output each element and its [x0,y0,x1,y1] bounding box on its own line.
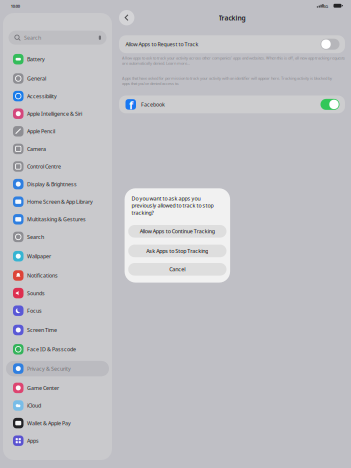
button[interactable]: Home Screen & App Library [3,193,112,210]
staticText: Do you want to ask apps you previously a… [132,195,214,216]
staticText: General [27,75,46,82]
staticText: Screen Time [27,326,57,334]
button[interactable]: Display & Brightness [3,175,112,193]
button[interactable]: Face ID & Passcode [3,340,112,358]
staticText: Privacy & Security [27,365,71,372]
staticText: Tracking [218,14,245,22]
staticText: Apple Intelligence & Siri [27,110,82,117]
staticText: Allow Apps to Request to Track [125,41,198,48]
button[interactable]: Wallet & Apple Pay [3,414,112,432]
button[interactable]: General [3,70,112,87]
button[interactable]: Back [119,10,134,25]
staticText: Apple Pencil [27,128,55,135]
staticText: Control Centre [27,163,61,170]
staticText: Multitasking & Gestures [27,216,86,223]
staticText: iCloud [27,402,41,409]
button[interactable]: Privacy & Security [3,358,112,379]
staticText: Camera [27,145,46,152]
staticText: Focus [27,307,42,314]
button[interactable]: iCloud [3,397,112,414]
staticText: Search [27,233,44,240]
staticText: Accessibility [27,93,57,100]
button[interactable]: Focus [3,302,112,319]
button[interactable]: Wallpaper [3,246,112,267]
staticText: Wallpaper [27,253,51,260]
button[interactable]: Screen Time [3,319,112,340]
button[interactable]: Game Center [3,379,112,397]
staticText: Ask Apps to Stop Tracking [146,247,208,254]
staticText: Sounds [27,290,45,297]
staticText: Notifications [27,272,58,279]
staticText: Face ID & Passcode [27,346,76,353]
staticText: Wallet & Apple Pay [27,420,71,427]
staticText: 10:00 [11,4,20,9]
button[interactable]: Ask Apps to Stop Tracking [128,245,226,257]
staticText: Game Center [27,384,59,391]
button[interactable]: Multitasking & Gestures [3,210,112,228]
button[interactable]: Sounds [3,284,112,302]
staticText: Allow apps to ask to track your activity… [122,55,345,66]
staticText: Home Screen & App Library [27,198,93,205]
staticText: Battery [27,56,45,63]
button[interactable]: Cancel [128,263,226,276]
button[interactable]: Apple Intelligence & Siri [3,105,112,122]
button[interactable]: Apps [3,432,112,449]
staticText: Allow Apps to Continue Tracking [140,228,215,235]
button[interactable]: Apple Pencil [3,122,112,140]
staticText: Apps [27,437,39,444]
staticText: Apps that have asked for permission to t… [122,75,332,86]
staticText: Search [24,34,41,41]
staticText: Cancel [169,266,185,273]
button[interactable]: Camera [3,140,112,158]
button[interactable]: Control Centre [3,158,112,175]
button[interactable]: Search [3,228,112,246]
button[interactable]: Search [8,31,106,45]
staticText: 5G [323,4,328,9]
staticText: Display & Brightness [27,181,77,188]
button[interactable]: Battery [3,49,112,70]
button[interactable]: Allow Apps to Continue Tracking [128,225,226,238]
button[interactable]: Accessibility [3,87,112,105]
staticText: Facebook [141,101,165,108]
staticText: f [129,98,133,112]
button[interactable]: Notifications [3,267,112,284]
